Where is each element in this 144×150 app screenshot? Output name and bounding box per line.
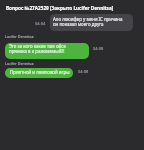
staticText: Это за кого какое там ойск пряника в а р…: [9, 44, 66, 54]
staticText: 04:04: [35, 21, 46, 26]
staticText: Вопрос №27А2529 [Закрыто Lucifer Dennits…: [6, 5, 114, 11]
staticText: Lucifer Dennitsa:: [5, 34, 35, 39]
staticText: Приятной и ламповой игры: [10, 70, 70, 75]
staticText: 04:08: [78, 69, 89, 74]
staticText: Ало лоюифер у меня IC причина он показал…: [53, 17, 123, 27]
staticText: Lucifer Dennitsa:: [5, 61, 35, 66]
staticText: 04:08: [93, 46, 104, 51]
button[interactable]: Это за кого какое там ойск пряника в а р…: [5, 43, 89, 59]
button[interactable]: Ало лоюифер у меня IC причина он показал…: [50, 14, 133, 31]
button[interactable]: Приятной и ламповой игры: [5, 68, 73, 78]
